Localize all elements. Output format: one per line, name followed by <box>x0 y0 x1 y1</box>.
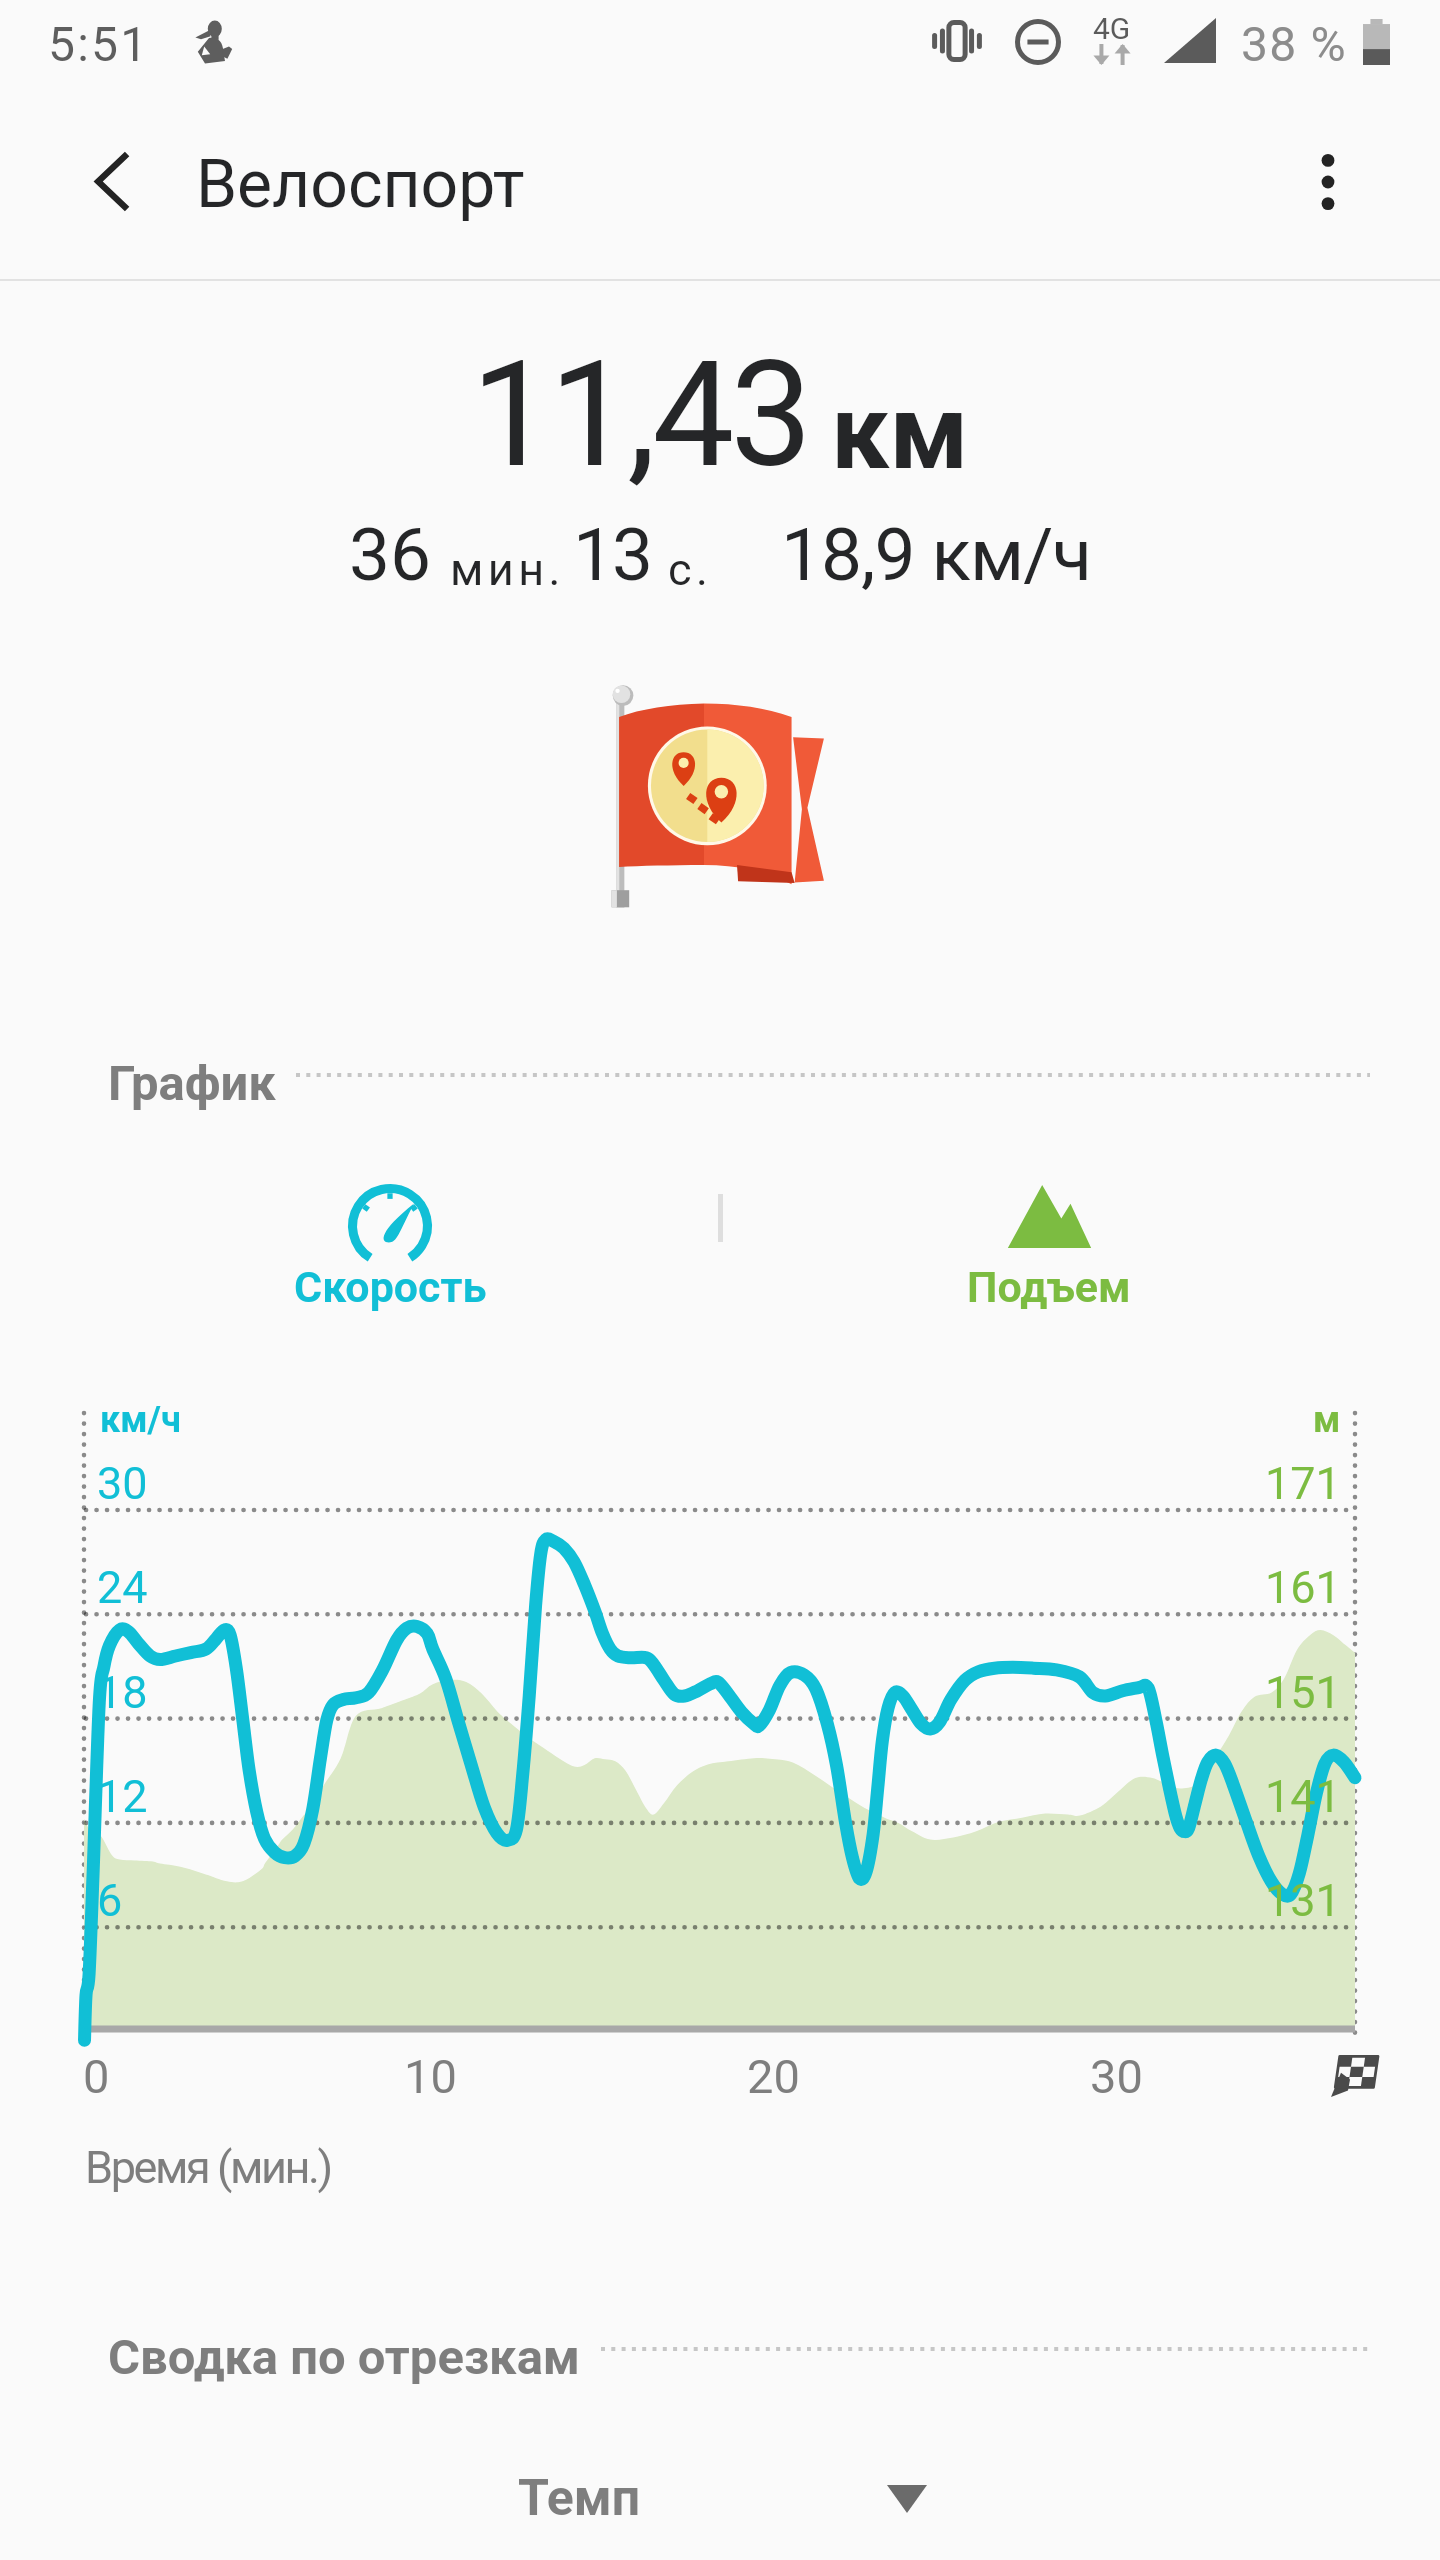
staticText: м <box>1313 1399 1341 1441</box>
button[interactable]: More options <box>1270 124 1386 240</box>
staticText: 0 <box>83 2049 110 2104</box>
staticText: Подъем <box>967 1262 1131 1312</box>
button[interactable]: Темп <box>500 2458 946 2560</box>
staticText: 30 <box>97 1457 148 1510</box>
staticText: км <box>831 372 969 494</box>
button[interactable]: Подъем <box>899 1172 1199 1328</box>
staticText: 131 <box>1265 1874 1341 1927</box>
staticText: 141 <box>1265 1770 1341 1823</box>
staticText: 38 % <box>1241 16 1347 72</box>
staticText: 12 <box>97 1770 148 1823</box>
staticText: 11,43 <box>471 330 809 501</box>
staticText: 4G <box>1093 11 1131 46</box>
staticText: 171 <box>1265 1457 1341 1510</box>
staticText: Сводка по отрезкам <box>108 2329 581 2386</box>
button[interactable]: Скорость <box>240 1172 540 1328</box>
staticText: 24 <box>97 1561 148 1614</box>
staticText: 151 <box>1265 1666 1341 1719</box>
staticText: 18 <box>97 1666 148 1719</box>
staticText: 5:51 <box>48 16 150 72</box>
staticText: 6 <box>97 1874 123 1927</box>
staticText: 13 <box>573 512 652 598</box>
staticText: км/ч <box>100 1399 181 1441</box>
staticText: 36 <box>349 512 432 598</box>
staticText: 20 <box>747 2049 800 2104</box>
staticText: мин. <box>450 543 565 596</box>
staticText: Скорость <box>294 1262 487 1312</box>
staticText: 10 <box>404 2049 457 2104</box>
staticText: Велоспорт <box>196 146 525 223</box>
button[interactable]: Back <box>56 126 166 236</box>
staticText: 161 <box>1265 1561 1341 1614</box>
staticText: 18,9 км/ч <box>781 512 1091 598</box>
staticText: Темп <box>518 2469 641 2528</box>
staticText: 30 <box>1090 2049 1143 2104</box>
staticText: Время (мин.) <box>85 2141 331 2194</box>
staticText: График <box>108 1055 276 1112</box>
staticText: с. <box>668 543 713 596</box>
